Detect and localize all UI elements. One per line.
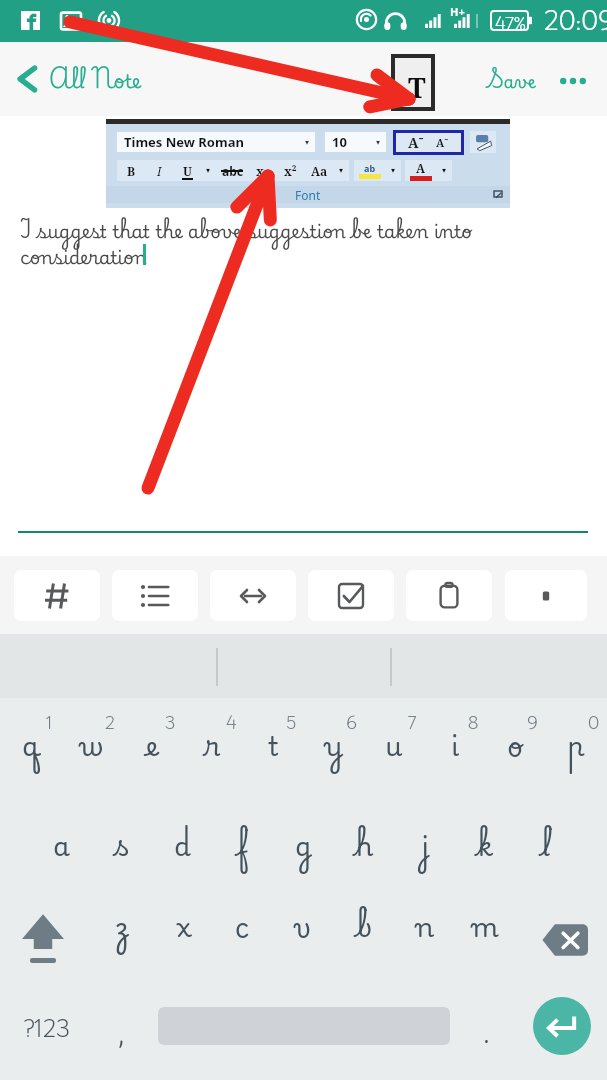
staticText: f: [237, 813, 249, 873]
button[interactable]: .: [460, 992, 512, 1072]
staticText: B: [127, 163, 136, 179]
button[interactable]: list: [112, 570, 198, 621]
staticText: Aˉ: [436, 135, 449, 150]
staticText: i: [451, 713, 460, 773]
button[interactable]: 2: [62, 710, 122, 796]
button[interactable]: 8: [425, 710, 485, 796]
staticText: T: [408, 69, 426, 106]
staticText: j: [421, 813, 430, 873]
staticText: ▾: [391, 166, 396, 175]
button[interactable]: 6: [304, 710, 364, 796]
staticText: n: [416, 894, 435, 954]
staticText: 0: [588, 710, 600, 737]
button[interactable]: hash: [14, 570, 100, 621]
staticText: ▾: [305, 138, 310, 147]
staticText: m: [472, 894, 499, 954]
staticText: k: [477, 813, 493, 873]
button[interactable]: d: [152, 803, 212, 883]
button[interactable]: s: [92, 803, 152, 883]
button[interactable]: Shift: [6, 900, 80, 980]
button[interactable]: ,: [95, 992, 147, 1072]
staticText: d: [174, 813, 191, 873]
button[interactable]: Save: [479, 59, 541, 101]
staticText: Times New Roman: [124, 133, 244, 151]
staticText: 20:09: [544, 1, 607, 41]
button[interactable]: h: [334, 803, 394, 883]
staticText: 47%: [495, 11, 526, 30]
staticText: o: [507, 713, 523, 773]
button[interactable]: check: [308, 570, 394, 621]
staticText: x²: [284, 163, 297, 179]
button[interactable]: b: [334, 884, 394, 964]
button[interactable]: 1: [1, 710, 61, 796]
button[interactable]: ?123: [12, 990, 82, 1070]
staticText: All Note: [49, 58, 141, 100]
button[interactable]: x: [152, 884, 212, 964]
button[interactable]: 5: [243, 710, 303, 796]
staticText: abc: [222, 163, 243, 179]
staticText: 8: [468, 710, 479, 737]
button[interactable]: 9: [485, 710, 545, 796]
staticText: t: [268, 713, 279, 773]
button[interactable]: 4: [183, 710, 243, 796]
staticText: v: [295, 894, 312, 954]
button[interactable]: clip: [406, 570, 492, 621]
staticText: p: [567, 713, 585, 773]
staticText: Aˉ: [408, 133, 424, 152]
button[interactable]: All Note: [18, 42, 141, 116]
staticText: 3: [165, 710, 176, 737]
button[interactable]: g: [273, 803, 333, 883]
staticText: Font: [295, 187, 321, 203]
button[interactable]: code: [210, 570, 296, 621]
button[interactable]: l: [516, 803, 576, 883]
staticText: r: [205, 713, 221, 773]
staticText: x₂: [256, 163, 269, 179]
button[interactable]: More options: [552, 61, 594, 101]
staticText: l: [541, 813, 552, 873]
staticText: x: [173, 894, 191, 954]
button[interactable]: n: [395, 884, 455, 964]
button[interactable]: a: [31, 803, 91, 883]
button[interactable]: c: [212, 884, 272, 964]
staticText: ,: [118, 1008, 125, 1057]
staticText: 4: [226, 710, 237, 737]
staticText: 1: [46, 710, 53, 737]
staticText: I suggest that the above suggestion be t…: [20, 209, 472, 249]
staticText: 2: [105, 710, 115, 737]
button[interactable]: quote: [505, 570, 587, 621]
button[interactable]: 7: [364, 710, 424, 796]
staticText: consideration: [20, 235, 147, 275]
button[interactable]: 0: [546, 710, 606, 796]
button[interactable]: z: [91, 884, 151, 964]
staticText: q: [22, 713, 40, 773]
staticText: ?123: [24, 1012, 70, 1048]
button[interactable]: v: [273, 884, 333, 964]
staticText: z: [115, 894, 128, 954]
button[interactable]: m: [455, 884, 515, 964]
button[interactable]: 3: [122, 710, 182, 796]
staticText: Save: [485, 61, 536, 99]
staticText: 7: [408, 710, 417, 737]
button[interactable]: j: [395, 803, 455, 883]
staticText: y: [325, 713, 343, 773]
staticText: b: [356, 894, 373, 954]
button[interactable]: Enter: [533, 997, 591, 1055]
button[interactable]: k: [455, 803, 515, 883]
staticText: w: [80, 713, 104, 773]
staticText: I: [157, 163, 162, 179]
staticText: ▾: [376, 138, 381, 147]
staticText: Aa: [311, 163, 328, 179]
staticText: 5: [286, 710, 297, 737]
staticText: H+: [450, 4, 465, 19]
staticText: u: [385, 713, 403, 773]
staticText: 9: [527, 710, 539, 737]
staticText: h: [355, 813, 374, 873]
button[interactable]: Text style: [395, 58, 431, 107]
button[interactable]: Backspace: [528, 900, 602, 980]
staticText: ▾: [442, 166, 447, 175]
staticText: g: [295, 813, 312, 873]
staticText: .: [483, 1008, 490, 1057]
button[interactable]: f: [213, 803, 273, 883]
staticText: A: [416, 160, 426, 176]
